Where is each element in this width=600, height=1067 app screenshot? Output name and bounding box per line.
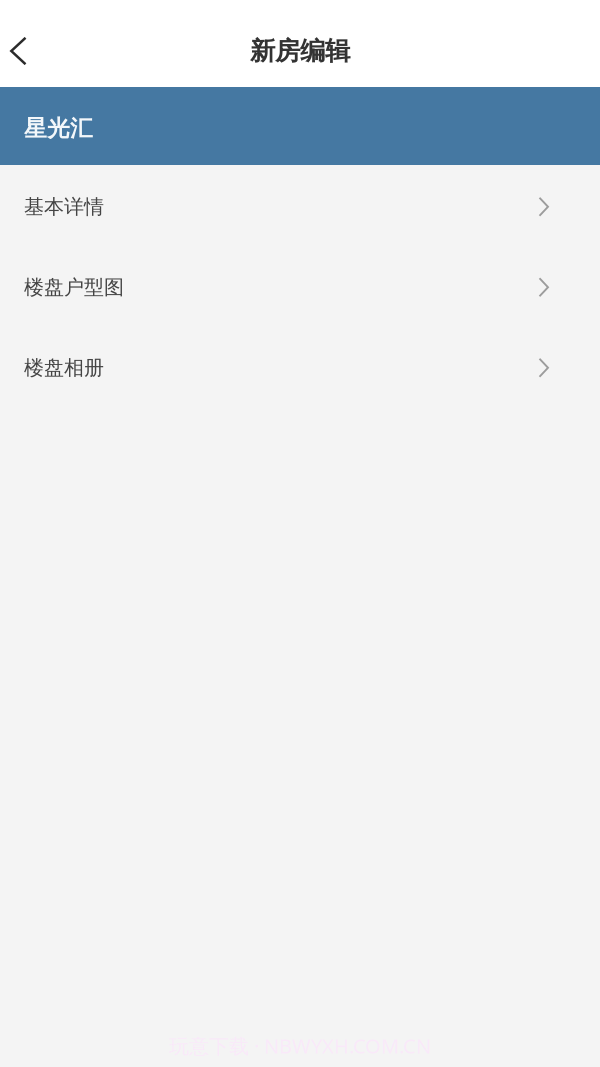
button[interactable]: 楼盘户型图 <box>0 245 600 326</box>
staticText: 基本详情 <box>24 194 104 219</box>
staticText: 楼盘户型图 <box>24 275 124 300</box>
staticText: 新房编辑 <box>250 35 350 66</box>
button[interactable]: 基本详情 <box>0 165 600 245</box>
button[interactable]: 楼盘相册 <box>0 326 600 406</box>
staticText: 玩意下载 · NBWYXH.COM.CN <box>169 1032 431 1059</box>
button[interactable]: Back <box>0 0 49 87</box>
staticText: 星光汇 <box>24 115 93 142</box>
staticText: 楼盘相册 <box>24 355 104 380</box>
